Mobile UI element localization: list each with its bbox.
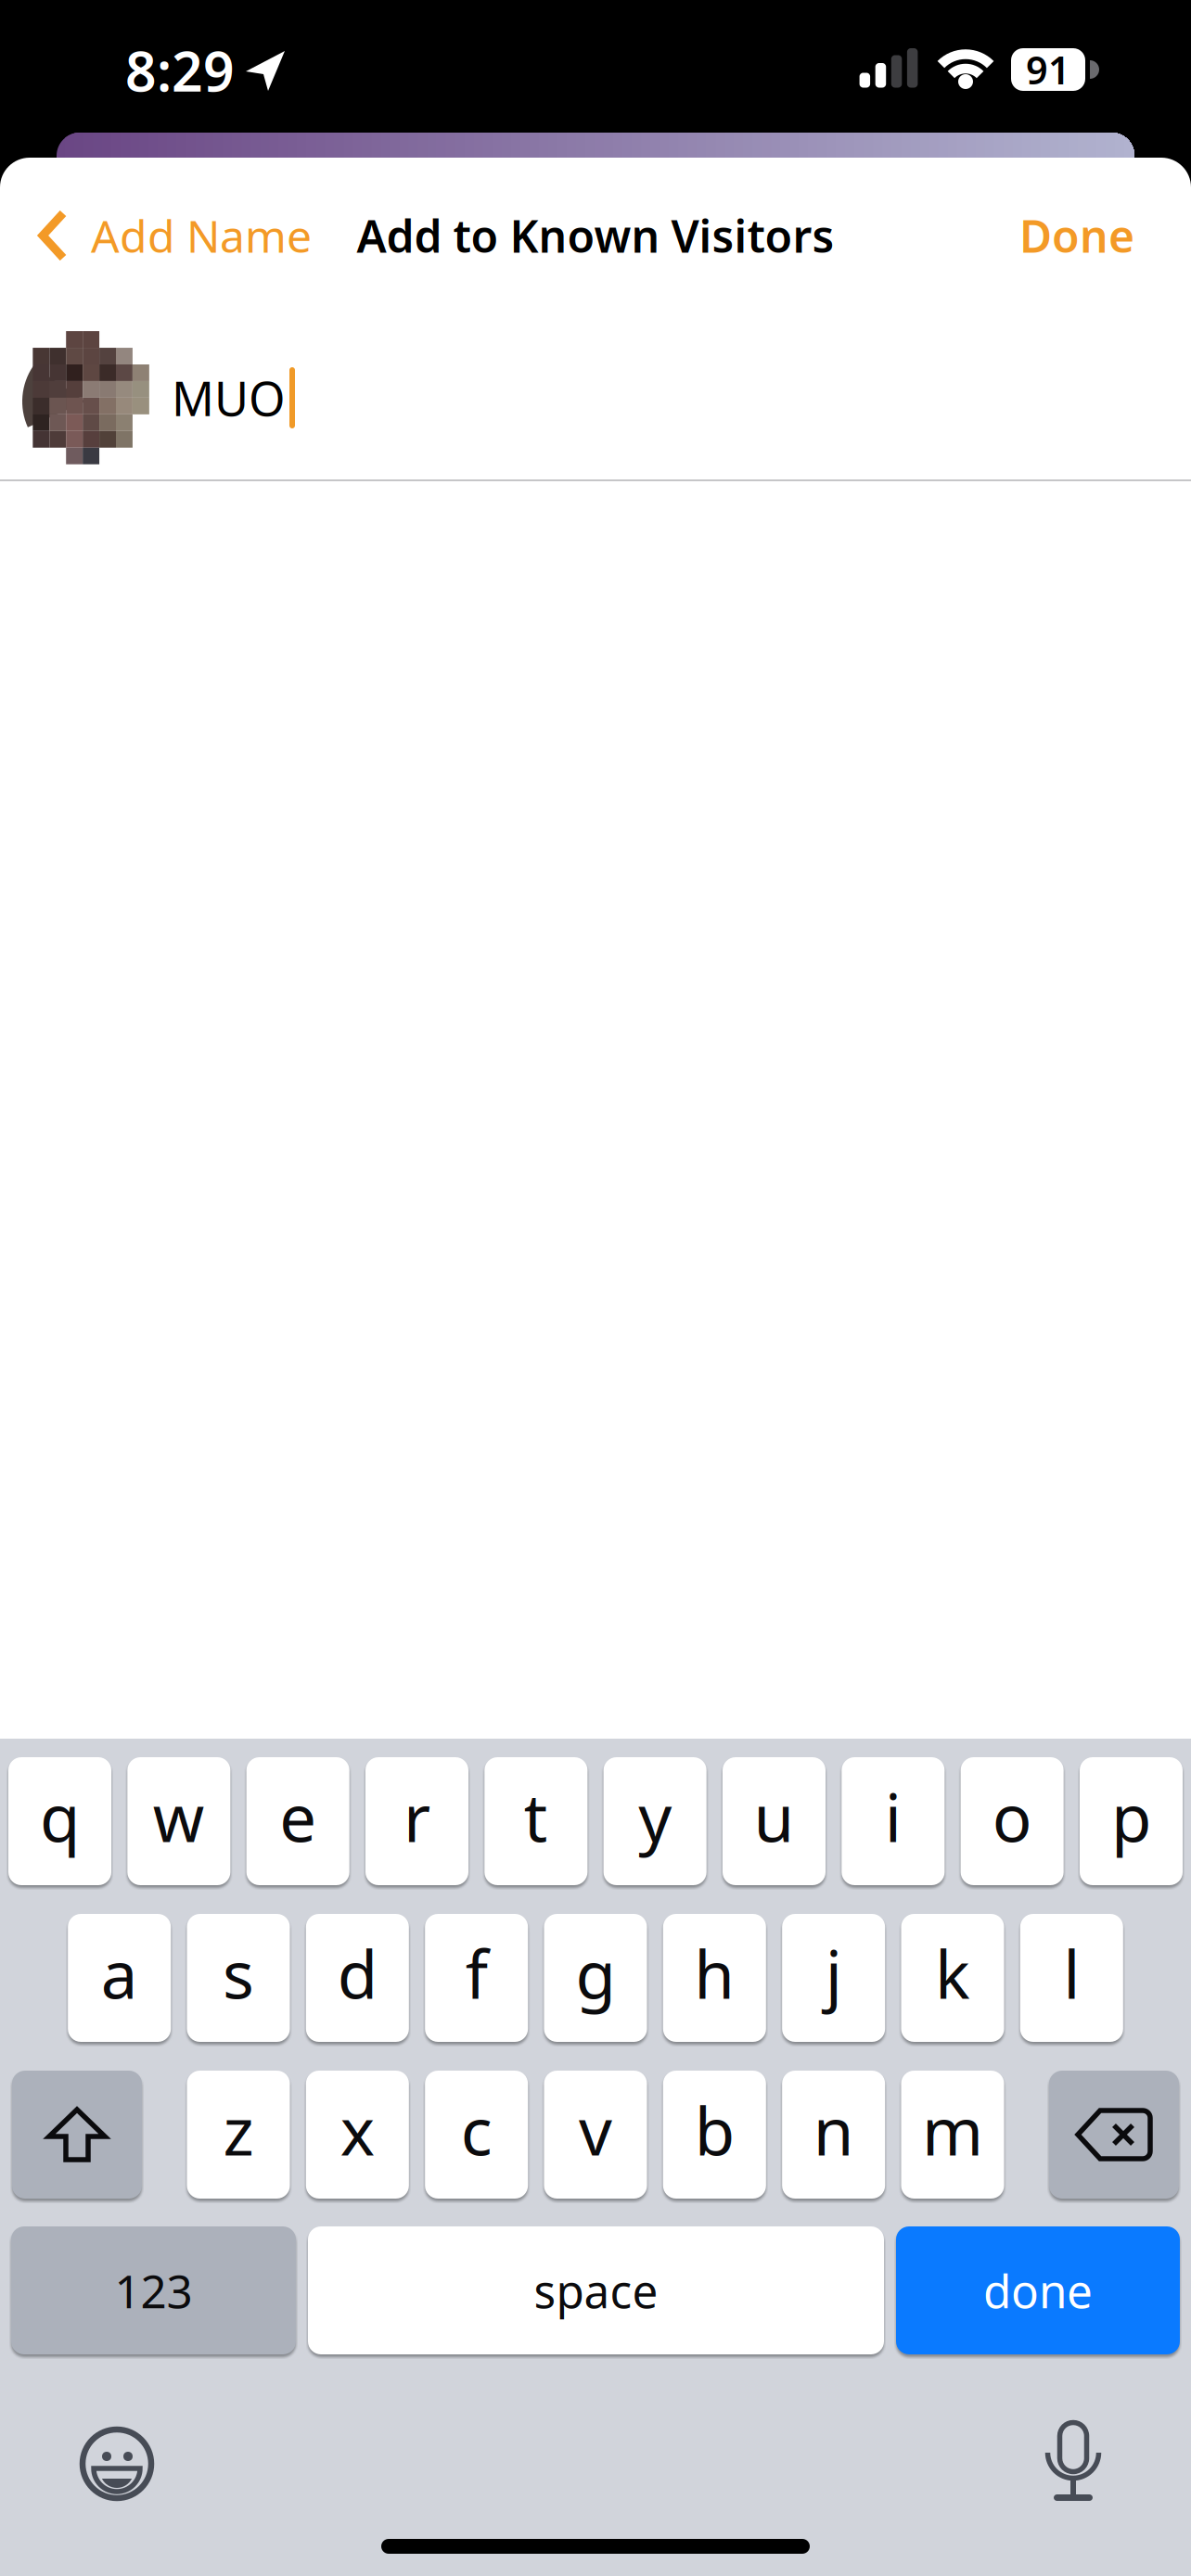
staticText: c [461, 2086, 492, 2173]
staticText: Add to Known Visitors [357, 206, 834, 265]
button[interactable]: s [187, 1914, 290, 2042]
staticText: k [935, 1930, 970, 2017]
button[interactable]: Add Name [37, 206, 312, 265]
button[interactable]: g [544, 1914, 647, 2042]
button[interactable]: x [306, 2071, 409, 2199]
staticText: 91 [1026, 44, 1070, 95]
button[interactable]: w [127, 1757, 230, 1885]
button[interactable]: Dictate [1043, 2422, 1104, 2502]
staticText: 8:29 [125, 34, 235, 107]
button[interactable]: u [723, 1757, 826, 1885]
button[interactable]: n [782, 2071, 885, 2199]
staticText: MUO [172, 367, 286, 429]
button[interactable]: e [246, 1757, 349, 1885]
staticText: j [825, 1930, 842, 2017]
button[interactable]: q [8, 1757, 111, 1885]
staticText: g [576, 1930, 615, 2017]
staticText: 123 [115, 2260, 192, 2321]
button[interactable]: b [663, 2071, 766, 2199]
staticText: a [101, 1930, 138, 2017]
staticText: done [983, 2260, 1093, 2321]
button[interactable]: y [604, 1757, 707, 1885]
staticText: v [579, 2086, 612, 2173]
button[interactable]: Shift [12, 2071, 142, 2199]
button[interactable]: o [961, 1757, 1064, 1885]
button[interactable]: r [365, 1757, 468, 1885]
button[interactable]: space [308, 2226, 884, 2354]
staticText: o [992, 1773, 1032, 1860]
staticText: x [340, 2086, 375, 2173]
button[interactable]: l [1020, 1914, 1123, 2042]
staticText: q [40, 1773, 80, 1860]
button[interactable]: a [68, 1914, 171, 2042]
button[interactable]: c [425, 2071, 528, 2199]
staticText: d [337, 1930, 377, 2017]
staticText: f [465, 1930, 488, 2017]
staticText: r [403, 1773, 430, 1860]
button[interactable]: p [1080, 1757, 1183, 1885]
staticText: e [279, 1773, 316, 1860]
button[interactable]: m [901, 2071, 1004, 2199]
staticText: t [524, 1773, 548, 1860]
staticText: i [885, 1773, 901, 1860]
button[interactable]: f [425, 1914, 528, 2042]
staticText: b [695, 2086, 734, 2173]
button[interactable]: v [544, 2071, 647, 2199]
staticText: Done [1019, 206, 1134, 265]
staticText: w [153, 1773, 205, 1860]
button[interactable]: done [896, 2226, 1180, 2354]
staticText: m [922, 2086, 983, 2173]
staticText: space [534, 2260, 658, 2321]
button[interactable]: i [842, 1757, 945, 1885]
button[interactable]: h [663, 1914, 766, 2042]
button[interactable]: Delete [1049, 2071, 1179, 2199]
staticText: s [223, 1930, 254, 2017]
button[interactable]: Emoji [78, 2425, 156, 2503]
staticText: z [223, 2086, 254, 2173]
staticText: n [813, 2086, 854, 2173]
button[interactable]: 123 [11, 2226, 296, 2354]
button[interactable]: z [187, 2071, 290, 2199]
staticText: Add Name [91, 206, 312, 265]
staticText: y [638, 1773, 672, 1860]
staticText: l [1063, 1930, 1080, 2017]
staticText: u [754, 1773, 794, 1860]
button[interactable]: j [782, 1914, 885, 2042]
button[interactable]: k [901, 1914, 1004, 2042]
button[interactable]: t [484, 1757, 587, 1885]
staticText: p [1111, 1773, 1151, 1860]
button[interactable]: d [306, 1914, 409, 2042]
staticText: h [694, 1930, 735, 2017]
button[interactable]: Done [1019, 206, 1134, 265]
